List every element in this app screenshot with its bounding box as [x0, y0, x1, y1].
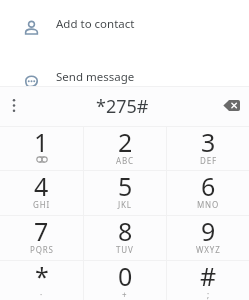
staticText: 1: [34, 125, 49, 159]
button[interactable]: 2: [84, 127, 166, 170]
staticText: MNO: [197, 199, 220, 210]
staticText: Add to contact: [56, 16, 135, 32]
button[interactable]: 8: [84, 216, 166, 260]
button[interactable]: More options: [4, 95, 24, 115]
button[interactable]: 7: [0, 216, 83, 260]
button[interactable]: 1: [0, 127, 83, 170]
staticText: ;: [207, 289, 210, 300]
button[interactable]: *: [0, 261, 83, 300]
button[interactable]: 6: [167, 171, 249, 215]
staticText: GHI: [33, 199, 51, 210]
staticText: *: [35, 259, 49, 293]
staticText: ABC: [116, 155, 134, 166]
staticText: 8: [118, 214, 133, 248]
button[interactable]: Add to contact: [0, 0, 249, 51]
button[interactable]: 3: [167, 127, 249, 170]
staticText: #: [200, 259, 217, 293]
staticText: JKL: [118, 199, 132, 210]
staticText: 3: [201, 125, 216, 159]
staticText: 7: [34, 214, 49, 248]
staticText: 0: [118, 259, 133, 293]
staticText: 9: [201, 214, 216, 248]
staticText: 2: [118, 125, 133, 159]
button[interactable]: 9: [167, 216, 249, 260]
staticText: ·: [40, 289, 43, 300]
staticText: WXYZ: [196, 244, 221, 255]
staticText: PQRS: [30, 244, 54, 255]
staticText: Send message: [56, 69, 135, 85]
staticText: +: [122, 289, 128, 300]
button[interactable]: 0: [84, 261, 166, 300]
staticText: 5: [118, 169, 133, 203]
button[interactable]: #: [167, 261, 249, 300]
button[interactable]: Backspace: [221, 95, 241, 115]
staticText: *275#: [96, 94, 149, 119]
button[interactable]: Send message: [0, 51, 249, 104]
staticText: 4: [34, 169, 49, 203]
staticText: TUV: [116, 244, 134, 255]
button[interactable]: 4: [0, 171, 83, 215]
button[interactable]: 5: [84, 171, 166, 215]
staticText: DEF: [200, 155, 217, 166]
staticText: 6: [201, 169, 216, 203]
